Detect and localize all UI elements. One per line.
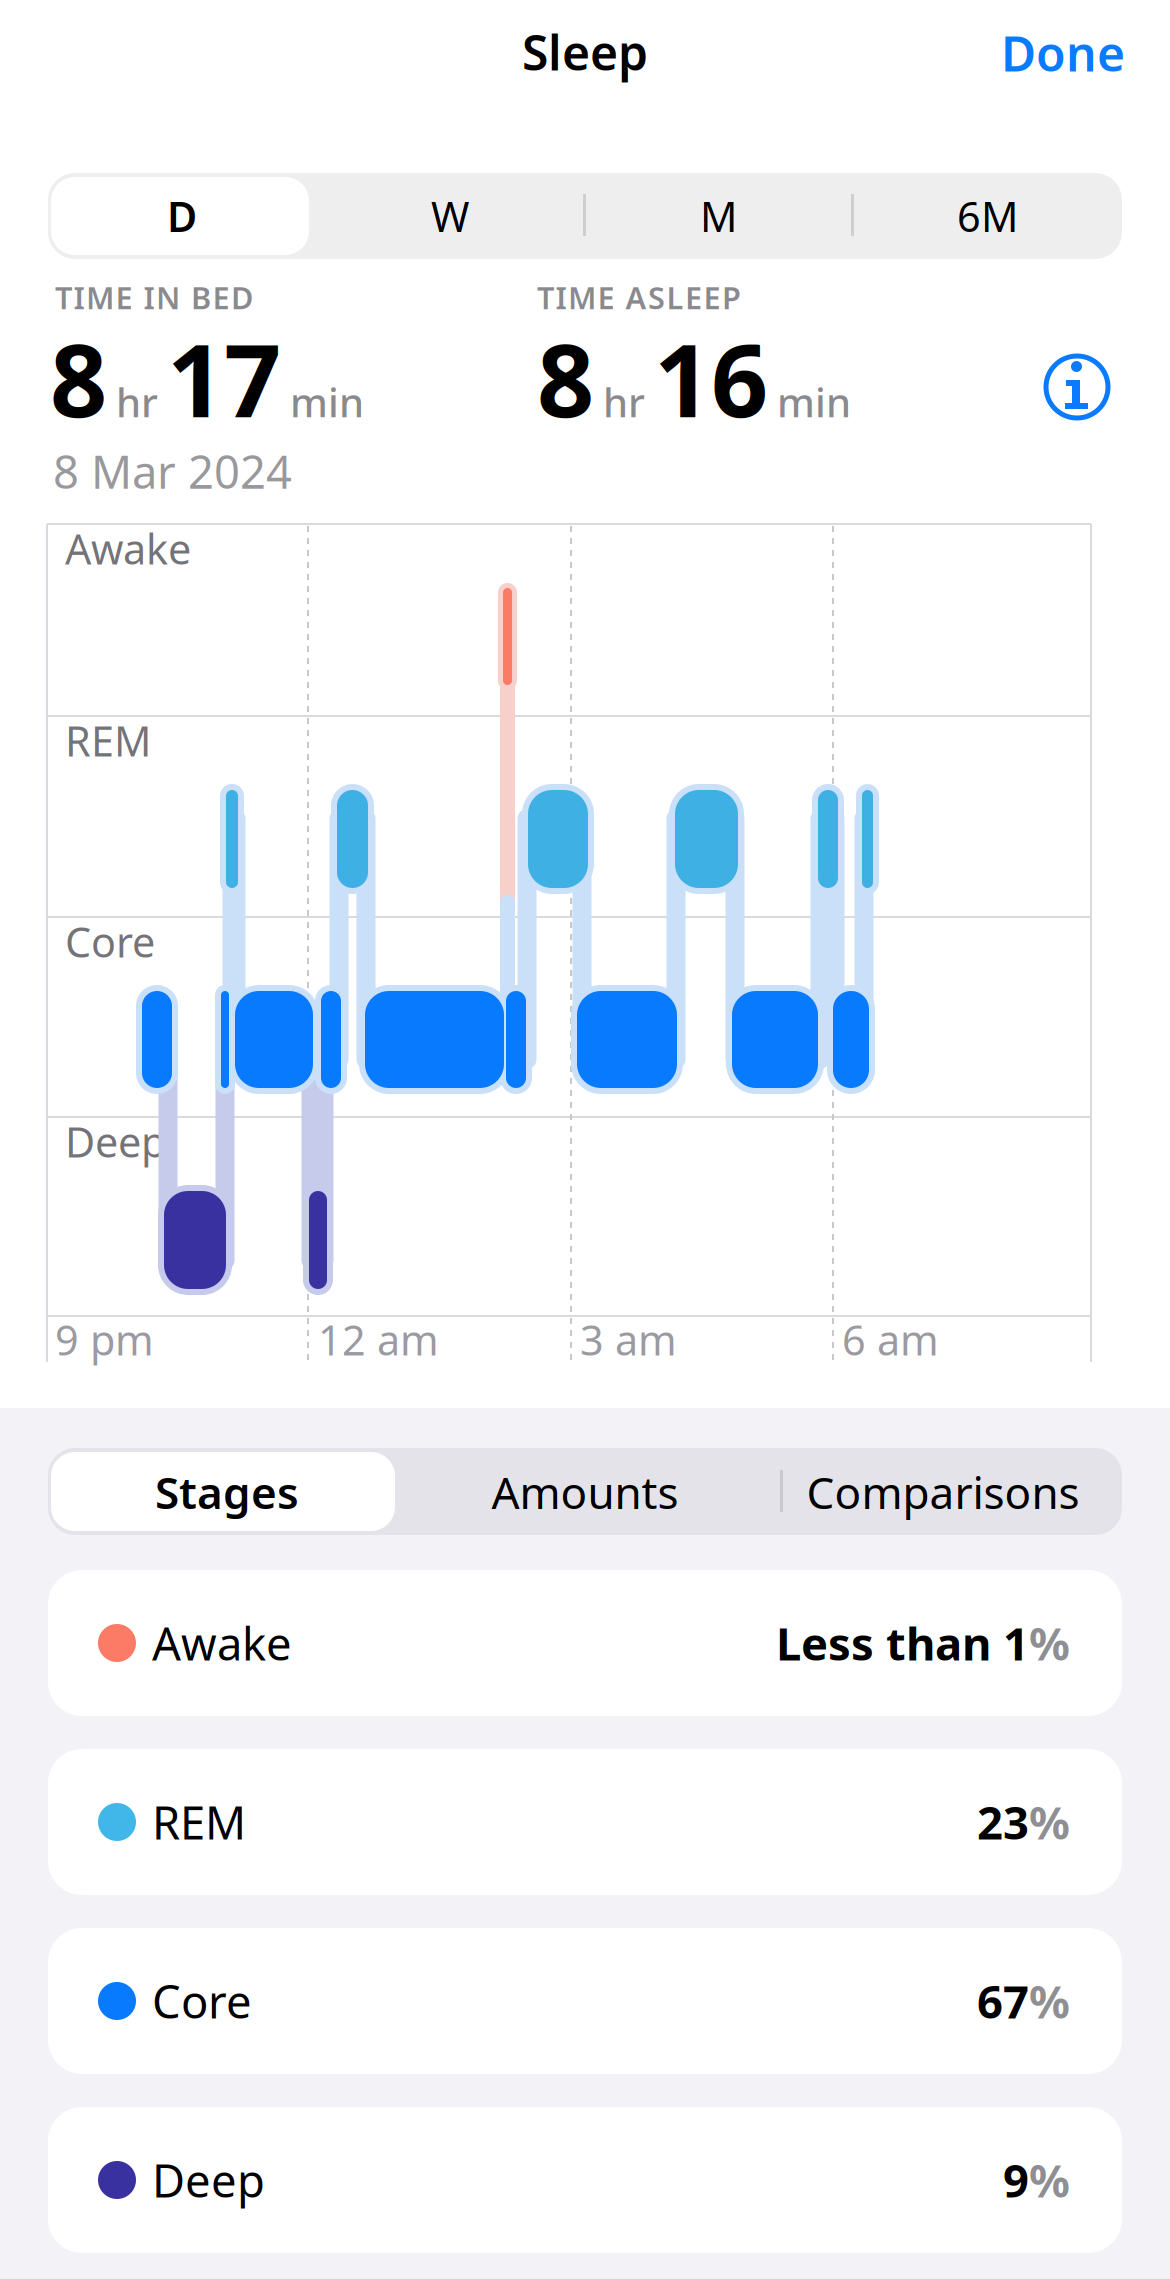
staticText: Awake (152, 1613, 292, 1673)
staticText: REM (152, 1792, 246, 1852)
button[interactable]: REM (48, 1749, 1122, 1895)
staticText: % (1029, 1971, 1070, 2031)
staticText: REM (65, 713, 151, 768)
button[interactable]: More information (1046, 356, 1108, 418)
staticText: 9 pm (55, 1312, 154, 1367)
staticText: hr (116, 375, 158, 428)
staticText: 12 am (318, 1312, 439, 1367)
staticText: Awake (65, 521, 191, 576)
button[interactable]: Core (48, 1928, 1122, 2074)
button[interactable]: W (316, 173, 584, 259)
button[interactable]: Comparisons (764, 1449, 1122, 1535)
button[interactable]: M (584, 173, 853, 259)
staticText: 6M (957, 189, 1018, 243)
staticText: D (167, 189, 197, 243)
staticText: Core (152, 1971, 252, 2031)
staticText: Deep (152, 2150, 265, 2210)
staticText: 3 am (580, 1312, 677, 1367)
button[interactable]: 6M (853, 173, 1122, 259)
staticText: 8 (537, 312, 594, 445)
button[interactable]: Deep (48, 2107, 1122, 2253)
staticText: Comparisons (806, 1463, 1079, 1521)
staticText: 67 (977, 1971, 1029, 2031)
staticText: Less than 1 (776, 1613, 1029, 1673)
staticText: Stages (155, 1463, 299, 1521)
staticText: % (1029, 2150, 1070, 2210)
staticText: Done (1001, 21, 1125, 85)
button[interactable]: Amounts (406, 1449, 764, 1535)
staticText: 17 (167, 312, 281, 445)
staticText: 6 am (842, 1312, 939, 1367)
button[interactable]: Awake (48, 1570, 1122, 1716)
staticText: Deep (65, 1114, 166, 1169)
staticText: TIME IN BED (55, 277, 253, 318)
staticText: % (1029, 1792, 1070, 1852)
staticText: min (777, 375, 851, 428)
button[interactable]: D (48, 173, 316, 259)
button[interactable]: Stages (48, 1449, 406, 1535)
staticText: 9 (1003, 2150, 1029, 2210)
staticText: hr (603, 375, 645, 428)
staticText: 8 Mar 2024 (53, 441, 292, 501)
staticText: Sleep (522, 20, 648, 84)
staticText: TIME ASLEEP (537, 277, 741, 318)
staticText: 16 (654, 312, 768, 445)
staticText: 8 (50, 312, 107, 445)
staticText: W (431, 189, 469, 243)
staticText: 23 (977, 1792, 1029, 1852)
staticText: Amounts (491, 1463, 678, 1521)
button[interactable]: Done (1001, 21, 1125, 85)
staticText: min (290, 375, 364, 428)
staticText: M (700, 189, 737, 243)
staticText: % (1029, 1613, 1070, 1673)
staticText: Core (65, 914, 155, 969)
